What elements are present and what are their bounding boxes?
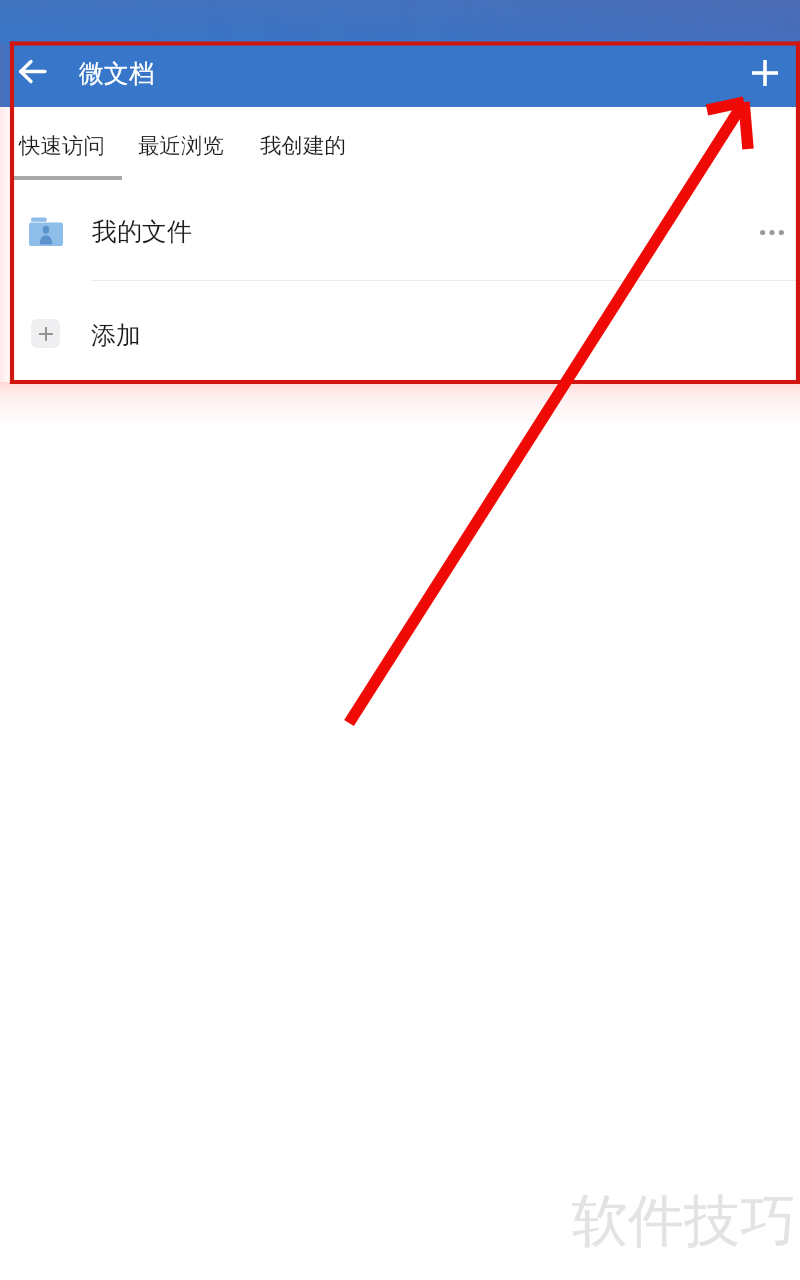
button[interactable]: Add new document [740,48,789,97]
button[interactable]: Back [9,48,56,95]
staticText: 软件技巧 [572,1186,796,1257]
staticText: 最近浏览 [138,132,224,159]
staticText: 快速访问 [19,132,105,159]
button[interactable]: 我创建的 [260,107,346,183]
staticText: 我创建的 [260,132,346,159]
button[interactable]: More options [744,202,800,262]
staticText: 添加 [91,320,141,351]
staticText: 微文档 [79,58,154,89]
button[interactable]: 添加 [0,281,800,382]
staticText: 我的文件 [92,216,192,247]
button[interactable]: 快速访问 [8,107,116,183]
button[interactable]: 我的文件 [0,183,800,280]
button[interactable]: 最近浏览 [138,107,224,183]
